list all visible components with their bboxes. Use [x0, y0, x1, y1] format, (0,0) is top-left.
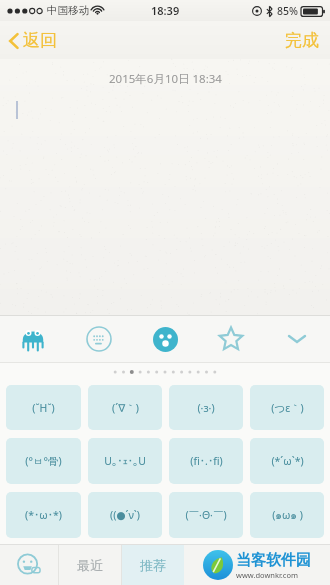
- button[interactable]: (*･ω･*): [6, 492, 81, 538]
- button[interactable]: Collapse keyboard: [264, 316, 330, 362]
- button[interactable]: (°ㅂ°骨): [6, 438, 81, 484]
- button[interactable]: Octopus stickers: [0, 316, 66, 362]
- staticText: (つε｀): [271, 401, 304, 415]
- staticText: (๑ω๑ ): [272, 507, 303, 524]
- staticText: (ﬁ･.･ﬁ): [190, 454, 223, 468]
- staticText: (￣·Θ·￣): [185, 508, 227, 522]
- staticText: 最近: [77, 557, 103, 573]
- staticText: 返回: [23, 30, 57, 51]
- button[interactable]: Emoji faces: [132, 316, 198, 362]
- button[interactable]: (￣·Θ·￣): [169, 492, 243, 538]
- button[interactable]: (ﬁ･.･ﬁ): [169, 438, 243, 484]
- button[interactable]: Emoji keyboard: [0, 545, 58, 585]
- button[interactable]: U｡･ｪ･｡U: [88, 438, 162, 484]
- staticText: ((●´ν`): [110, 508, 140, 522]
- button[interactable]: (*´ω`*): [250, 438, 324, 484]
- staticText: 中国移动: [47, 4, 89, 17]
- button[interactable]: (˘H˘): [6, 385, 81, 430]
- staticText: 推荐: [140, 557, 166, 573]
- staticText: (*･ω･*): [25, 508, 62, 522]
- staticText: 当客软件园: [236, 551, 311, 570]
- button[interactable]: Favorites: [198, 316, 264, 362]
- button[interactable]: (·ɜ·): [169, 385, 243, 430]
- staticText: www.downkr.com: [236, 570, 298, 580]
- staticText: (°ㅂ°骨): [25, 454, 62, 468]
- staticText: 85%: [277, 4, 298, 18]
- button[interactable]: (๑ω๑ ): [250, 492, 324, 538]
- button[interactable]: (´∇｀): [88, 385, 162, 430]
- staticText: (·ɜ·): [197, 401, 215, 415]
- button[interactable]: Keyboard emoticons: [66, 316, 132, 362]
- button[interactable]: 完成: [274, 25, 330, 56]
- staticText: 2015年6月10日 18:34: [109, 71, 222, 87]
- staticText: 18:39: [151, 3, 180, 18]
- button[interactable]: (つε｀): [250, 385, 324, 430]
- button[interactable]: 返回: [0, 26, 67, 55]
- staticText: (*´ω`*): [271, 454, 304, 468]
- button[interactable]: 推荐: [122, 545, 184, 585]
- button[interactable]: ((●´ν`): [88, 492, 162, 538]
- staticText: 完成: [285, 30, 319, 51]
- staticText: (˘H˘): [32, 401, 55, 415]
- button[interactable]: 最近: [59, 545, 121, 585]
- staticText: (´∇｀): [112, 401, 139, 415]
- staticText: U｡･ｪ･｡U: [104, 454, 146, 468]
